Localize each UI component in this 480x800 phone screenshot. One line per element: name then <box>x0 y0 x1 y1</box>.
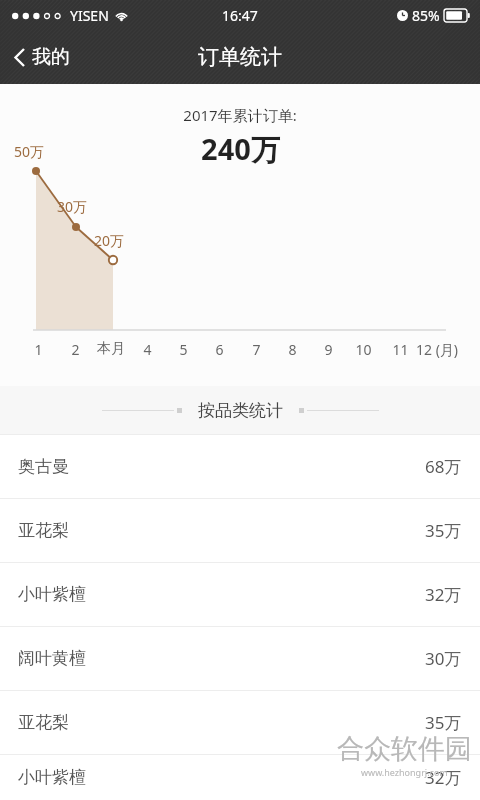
staticText: 10 <box>355 340 372 359</box>
staticText: 30万 <box>425 647 462 670</box>
staticText: 小叶紫檀 <box>18 767 86 788</box>
button[interactable]: 阔叶黄檀 <box>0 627 480 690</box>
button[interactable]: 亚花梨 <box>0 499 480 562</box>
staticText: 1 <box>34 340 43 359</box>
staticText: www.hezhongrj.com <box>361 766 448 778</box>
staticText: 本月 <box>97 340 125 358</box>
staticText: 亚花梨 <box>18 520 69 541</box>
staticText: 2017年累计订单: <box>183 105 297 125</box>
staticText: 亚花梨 <box>18 712 69 733</box>
staticText: 我的 <box>32 45 70 69</box>
staticText: 50万 <box>14 142 45 161</box>
staticText: 合众软件园 <box>337 732 472 766</box>
staticText: 阔叶黄檀 <box>18 648 86 669</box>
staticText: 68万 <box>425 455 462 478</box>
button[interactable]: 返回 我的 <box>0 37 84 77</box>
staticText: 9 <box>324 340 333 359</box>
staticText: 32万 <box>425 766 462 789</box>
staticText: 7 <box>252 340 261 359</box>
staticText: 85% <box>412 6 440 25</box>
staticText: 32万 <box>425 583 462 606</box>
staticText: 奥古曼 <box>18 456 69 477</box>
staticText: 订单统计 <box>198 44 282 70</box>
staticText: 30万 <box>57 197 88 216</box>
staticText: 按品类统计 <box>198 400 283 421</box>
button[interactable]: 亚花梨 <box>0 691 480 754</box>
staticText: 4 <box>143 340 152 359</box>
button[interactable]: 小叶紫檀 <box>0 563 480 626</box>
staticText: 20万 <box>94 231 125 250</box>
staticText: 8 <box>288 340 297 359</box>
staticText: 5 <box>179 340 188 359</box>
staticText: 6 <box>215 340 224 359</box>
staticText: 11 <box>392 340 409 359</box>
staticText: 小叶紫檀 <box>18 584 86 605</box>
staticText: 2 <box>71 340 80 359</box>
staticText: 35万 <box>425 711 462 734</box>
staticText: 16:47 <box>222 6 258 25</box>
staticText: 12 (月) <box>416 340 459 359</box>
button[interactable]: 奥古曼 <box>0 435 480 498</box>
staticText: YISEN <box>70 6 109 25</box>
button[interactable]: 小叶紫檀 <box>0 755 480 800</box>
staticText: 240万 <box>201 129 280 169</box>
staticText: 35万 <box>425 519 462 542</box>
